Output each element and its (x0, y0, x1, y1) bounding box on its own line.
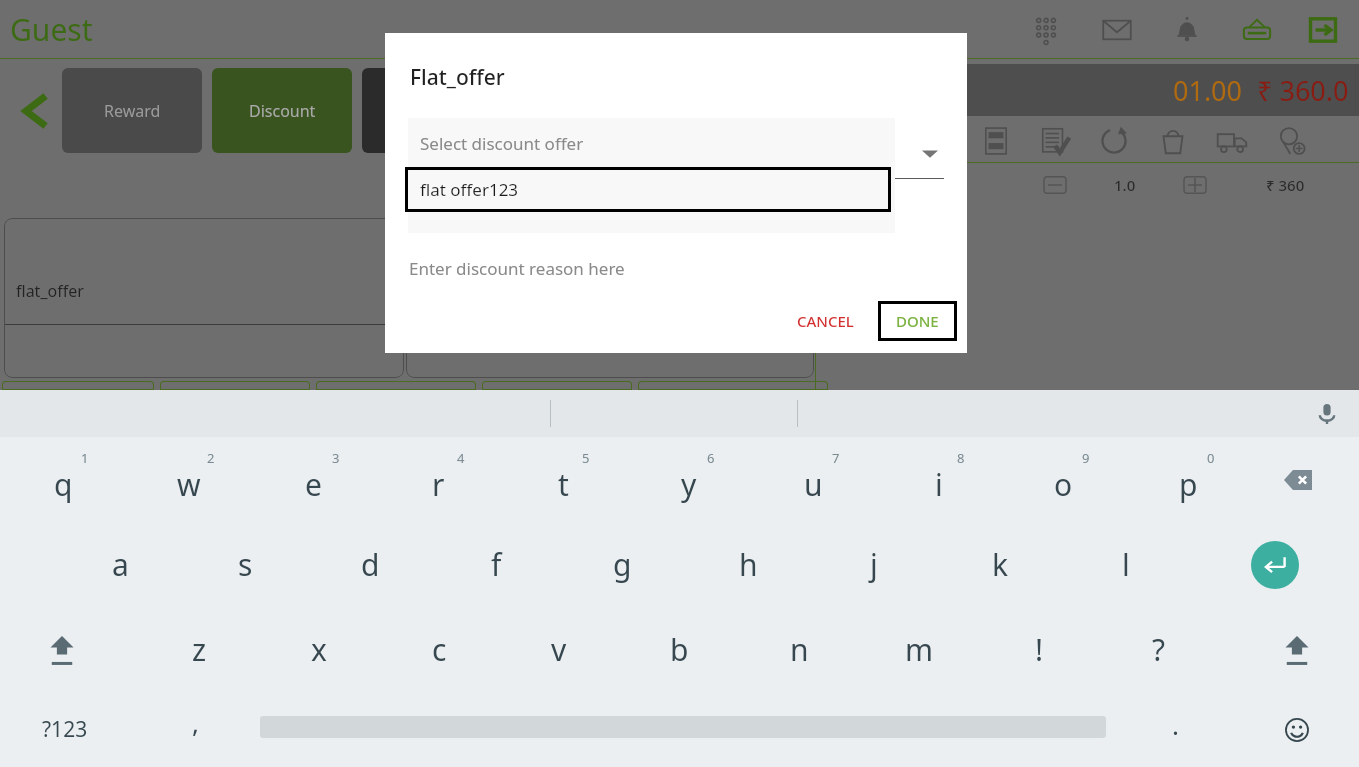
staticText: flat_offer (16, 280, 84, 302)
button[interactable]: 8 (876, 437, 1001, 522)
staticText: b (670, 629, 689, 670)
staticText: w (177, 464, 201, 505)
button[interactable]: m (859, 607, 979, 692)
staticText: 4 (457, 449, 465, 467)
staticText: h (739, 544, 758, 585)
staticText: v (551, 629, 567, 670)
staticText: a (112, 544, 129, 585)
button[interactable]: j (811, 522, 937, 607)
button[interactable]: Notifications (1167, 10, 1207, 50)
button[interactable]: 6 (626, 437, 751, 522)
staticText: ? (1152, 629, 1166, 670)
staticText: . (1172, 707, 1179, 742)
button[interactable]: c (379, 607, 499, 692)
other: Back (14, 91, 54, 131)
button[interactable]: Emoji (1275, 708, 1319, 752)
button[interactable]: DONE (878, 301, 957, 341)
staticText: ! (1035, 629, 1044, 670)
button[interactable] (406, 218, 814, 378)
staticText: t (558, 464, 569, 505)
button[interactable]: d (308, 522, 433, 607)
button[interactable]: No sell (975, 120, 1017, 162)
button[interactable]: Apps (1027, 10, 1067, 50)
button[interactable]: n (739, 607, 859, 692)
button[interactable]: ! (979, 607, 1099, 692)
button[interactable]: b (619, 607, 739, 692)
staticText: 1 (81, 449, 89, 467)
staticText: s (238, 544, 253, 585)
button[interactable]: 1 (0, 437, 126, 522)
button[interactable]: 4 (376, 437, 501, 522)
staticText: Flat_offer (410, 63, 505, 92)
staticText: 2 (207, 449, 215, 467)
staticText: d (361, 544, 380, 585)
button[interactable]: Enter (1251, 541, 1299, 589)
button[interactable]: Open discount offers (910, 133, 950, 173)
staticText: m (905, 629, 934, 670)
staticText: DONE (896, 311, 939, 331)
button[interactable]: 3 (251, 437, 376, 522)
button[interactable]: , (150, 692, 240, 767)
staticText: g (613, 544, 632, 585)
staticText: Select discount offer (420, 132, 584, 155)
button[interactable] (160, 381, 310, 390)
button[interactable]: Delivery (1211, 120, 1253, 162)
button[interactable]: Voice input (1309, 396, 1345, 432)
button[interactable]: x (259, 607, 379, 692)
button[interactable]: Discount (212, 68, 352, 153)
staticText: Reward (104, 100, 161, 122)
button[interactable]: 7 (751, 437, 876, 522)
staticText: 8 (957, 449, 965, 467)
button[interactable]: Bag (1152, 120, 1194, 162)
button[interactable]: Add location (1270, 120, 1312, 162)
staticText: Discount (249, 100, 316, 122)
button[interactable]: Close register (1237, 10, 1277, 50)
button[interactable]: Backspace (1273, 455, 1323, 505)
button[interactable]: Reward (62, 68, 202, 153)
button[interactable]: Shift (1265, 607, 1329, 692)
button[interactable] (482, 381, 632, 390)
button[interactable]: . (1130, 692, 1220, 767)
staticText: n (790, 629, 809, 670)
button[interactable]: h (685, 522, 811, 607)
button[interactable]: Back (6, 83, 62, 139)
button[interactable]: Logout (1303, 10, 1343, 50)
staticText: p (1179, 464, 1198, 505)
button[interactable]: Increase quantity (1180, 170, 1210, 200)
button[interactable] (362, 68, 502, 153)
button[interactable]: flat offer123 (408, 170, 888, 209)
button[interactable]: l (1063, 522, 1189, 607)
button[interactable]: CANCEL (781, 301, 870, 341)
button[interactable]: a (58, 522, 183, 607)
button[interactable]: k (937, 522, 1063, 607)
button[interactable]: 5 (501, 437, 626, 522)
button[interactable]: Messages (1097, 10, 1137, 50)
button[interactable]: Notes (1034, 120, 1076, 162)
button[interactable] (316, 381, 476, 390)
button[interactable]: 0 (1126, 437, 1251, 522)
staticText: ₹ 360 (1266, 175, 1305, 195)
staticText: o (1054, 464, 1073, 505)
button[interactable]: Decrease quantity (1040, 170, 1070, 200)
button[interactable]: flat_offer (4, 218, 404, 378)
staticText: z (192, 629, 207, 670)
button[interactable] (2, 381, 154, 390)
button[interactable]: f (433, 522, 559, 607)
button[interactable]: Shift (30, 607, 94, 692)
button[interactable] (638, 381, 828, 390)
staticText: e (305, 464, 322, 505)
staticText: x (311, 629, 327, 670)
button[interactable]: Refresh (1093, 120, 1135, 162)
button[interactable]: ? (1099, 607, 1219, 692)
staticText: Enter discount reason here (409, 257, 625, 280)
button[interactable]: z (140, 607, 259, 692)
button[interactable]: s (183, 522, 308, 607)
staticText: 7 (832, 449, 840, 467)
button[interactable]: ?123 (20, 692, 110, 767)
staticText: y (681, 464, 697, 505)
button[interactable]: g (559, 522, 685, 607)
button[interactable]: 9 (1001, 437, 1126, 522)
button[interactable]: v (499, 607, 619, 692)
button[interactable]: 2 (126, 437, 251, 522)
